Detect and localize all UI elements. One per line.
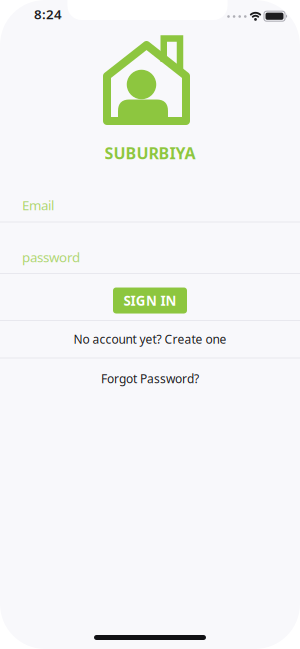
staticText: No account yet? Create one [73,331,226,347]
staticText: SIGN IN [123,292,177,309]
staticText: Forgot Password? [101,370,199,386]
button[interactable]: Email [0,190,300,220]
staticText: password [22,248,80,266]
button[interactable]: No account yet? Create one [0,324,300,354]
staticText: 8:24 [34,5,62,23]
staticText: SUBURBIYA [104,142,195,164]
button[interactable]: password [0,242,300,272]
button[interactable]: SIGN IN [113,287,187,313]
staticText: Email [22,196,54,214]
button[interactable]: Forgot Password? [0,363,300,393]
